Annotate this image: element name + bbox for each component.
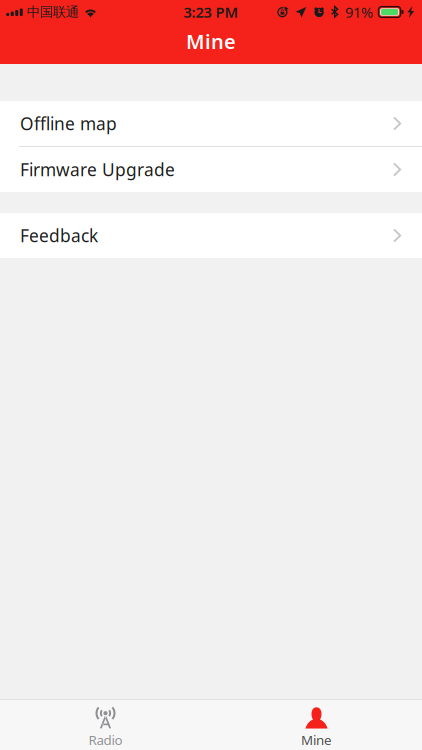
staticText: 3:23 PM (183, 2, 238, 22)
button[interactable]: Mine (211, 700, 422, 750)
button[interactable]: Firmware Upgrade (0, 147, 422, 192)
button[interactable]: Feedback (0, 213, 422, 258)
staticText: Offline map (20, 112, 117, 135)
staticText: Mine (301, 731, 332, 749)
button[interactable]: Radio (0, 700, 211, 750)
staticText: Radio (88, 731, 122, 749)
staticText: 91% (345, 2, 373, 22)
staticText: Feedback (20, 224, 98, 247)
staticText: Mine (186, 28, 236, 55)
button[interactable]: Offline map (0, 101, 422, 147)
staticText: 中国联通 (27, 4, 79, 20)
staticText: Firmware Upgrade (20, 158, 175, 181)
